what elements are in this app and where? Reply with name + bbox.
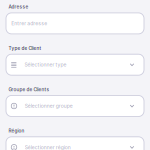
staticText: Groupe de Clients	[8, 87, 49, 92]
staticText: Type de Client	[8, 45, 41, 51]
button[interactable]: Entrer adresse	[0, 13, 150, 34]
button[interactable]: Sélectionner groupe	[0, 95, 150, 116]
staticText: Région	[8, 128, 24, 134]
staticText: Sélectionner région	[25, 144, 71, 150]
staticText: Sélectionner groupe	[25, 103, 73, 109]
button[interactable]: Sélectionner type	[0, 54, 150, 75]
staticText: Adresse	[8, 4, 28, 10]
button[interactable]: Sélectionner région	[0, 137, 150, 150]
staticText: Sélectionner type	[24, 62, 66, 68]
staticText: Entrer adresse	[11, 20, 47, 26]
